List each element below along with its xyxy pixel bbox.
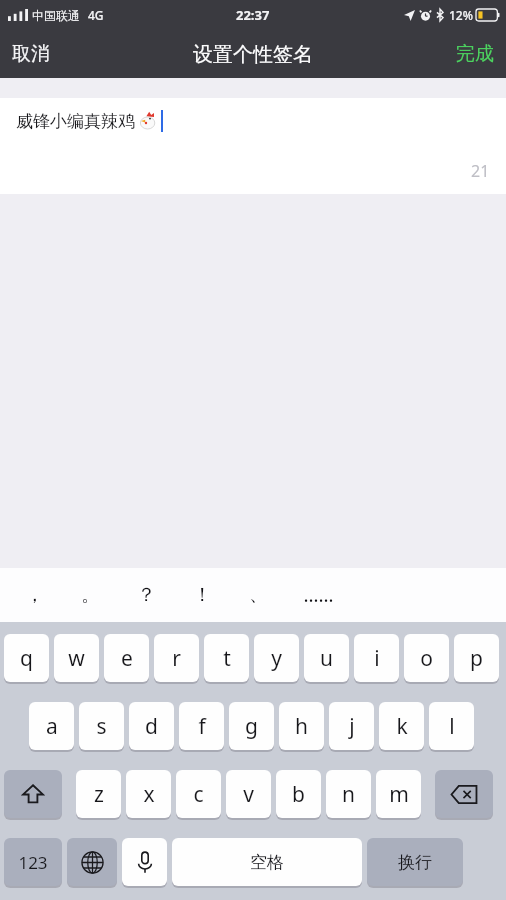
button[interactable]: 123 [4,838,62,886]
button[interactable]: s [79,702,124,750]
button[interactable]: p [454,634,499,682]
button[interactable]: l [429,702,474,750]
button[interactable]: 威锋小编真辣鸡 [0,98,506,194]
staticText: 。 [81,583,100,607]
button[interactable]: r [154,634,199,682]
staticText: 123 [18,851,48,874]
button[interactable]: 。 [62,568,118,622]
staticText: y [271,644,282,673]
button[interactable]: 完成 [444,32,506,76]
button[interactable]: Backspace [435,770,493,818]
button[interactable]: Voice input [122,838,167,886]
button[interactable]: w [54,634,99,682]
button[interactable]: y [254,634,299,682]
button[interactable]: j [329,702,374,750]
button[interactable]: i [354,634,399,682]
staticText: s [96,712,107,741]
staticText: w [68,644,85,673]
staticText: o [420,644,433,673]
button[interactable]: ！ [174,568,230,622]
staticText: 换行 [398,852,432,873]
staticText: a [46,712,58,741]
button[interactable]: t [204,634,249,682]
button[interactable]: Switch keyboard [67,838,117,886]
staticText: v [243,780,254,809]
staticText: 取消 [12,42,50,66]
staticText: j [349,712,355,741]
button[interactable]: f [179,702,224,750]
staticText: d [145,712,158,741]
button[interactable]: u [304,634,349,682]
staticText: 21 [471,160,490,182]
button[interactable]: 取消 [0,32,62,76]
button[interactable]: ？ [118,568,174,622]
button[interactable]: 、 [230,568,286,622]
button[interactable]: k [379,702,424,750]
staticText: b [292,780,305,809]
button[interactable]: ， [6,568,62,622]
staticText: 设置个性签名 [193,42,313,67]
button[interactable]: o [404,634,449,682]
staticText: p [470,644,483,673]
button[interactable]: …… [286,568,350,622]
button[interactable]: e [104,634,149,682]
button[interactable]: h [279,702,324,750]
button[interactable]: z [76,770,121,818]
button[interactable]: d [129,702,174,750]
staticText: k [396,712,408,741]
staticText: c [193,780,204,809]
staticText: e [121,644,133,673]
staticText: t [223,644,231,673]
staticText: …… [303,582,334,608]
staticText: r [172,644,181,673]
button[interactable]: v [226,770,271,818]
staticText: h [295,712,308,741]
button[interactable]: m [376,770,421,818]
staticText: q [20,644,33,673]
button[interactable]: Shift [4,770,62,818]
staticText: 完成 [456,42,494,66]
button[interactable]: a [29,702,74,750]
staticText: 威锋小编真辣鸡 [16,111,135,132]
button[interactable]: 空格 [172,838,362,886]
staticText: u [320,644,333,673]
staticText: ？ [137,583,156,607]
button[interactable]: g [229,702,274,750]
staticText: 空格 [250,852,284,873]
staticText: m [389,780,409,809]
button[interactable]: 换行 [367,838,463,886]
button[interactable]: n [326,770,371,818]
staticText: z [94,780,104,809]
staticText: x [143,780,155,809]
staticText: 22:37 [236,6,270,24]
staticText: l [449,712,455,741]
staticText: n [342,780,355,809]
button[interactable]: c [176,770,221,818]
staticText: 12% [449,7,473,23]
staticText: 中国联通 [32,8,80,23]
staticText: g [245,712,258,741]
button[interactable]: b [276,770,321,818]
button[interactable]: x [126,770,171,818]
button[interactable]: q [4,634,49,682]
staticText: 4G [88,7,104,23]
staticText: ， [25,583,44,607]
staticText: f [198,712,206,741]
staticText: ！ [193,583,212,607]
staticText: i [374,644,380,673]
staticText: 、 [249,583,268,607]
